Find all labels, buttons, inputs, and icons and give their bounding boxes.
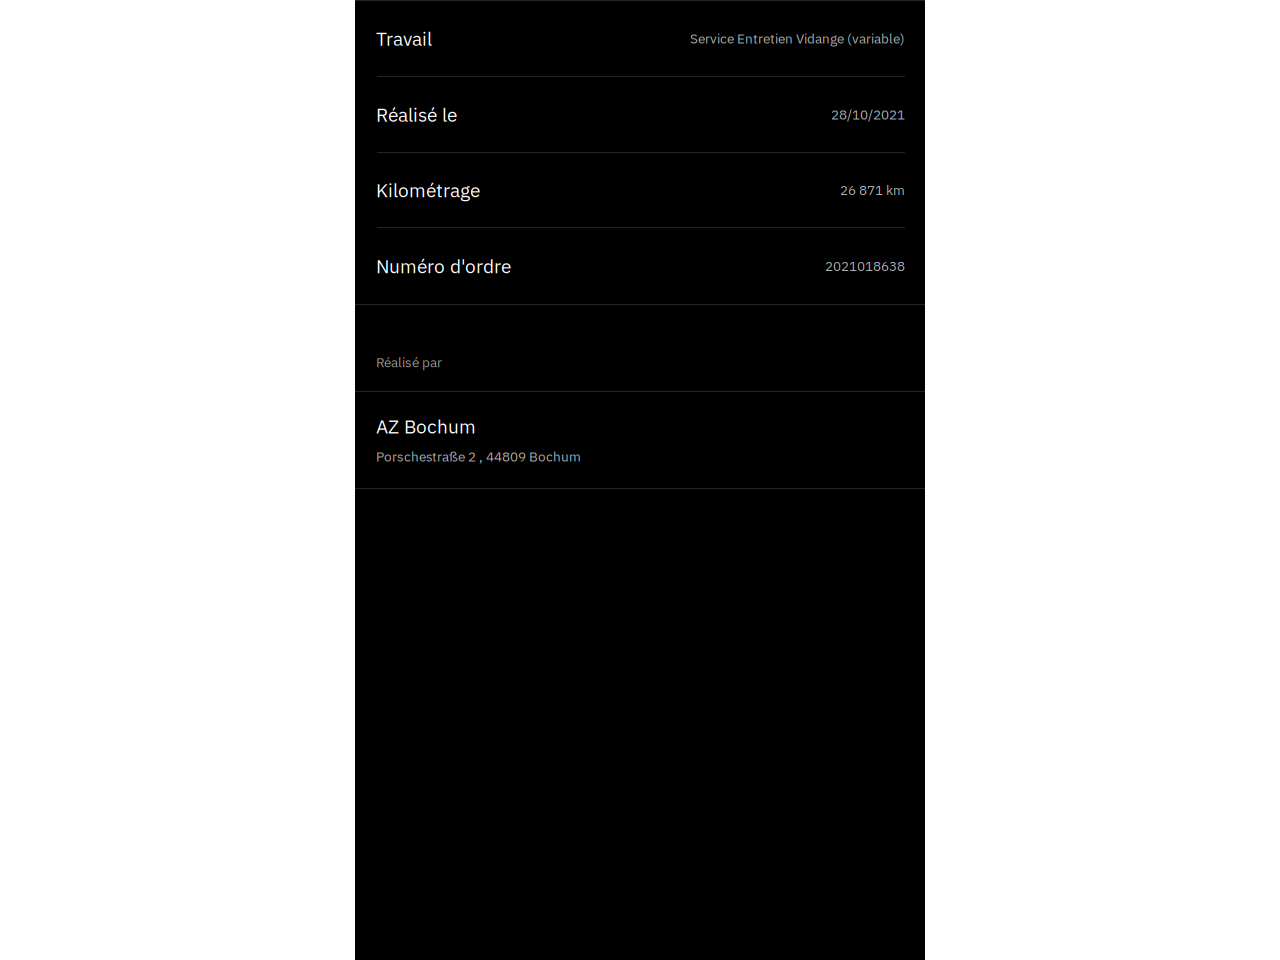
staticText: Numéro d'ordre	[376, 254, 511, 278]
staticText: Service Entretien Vidange (variable)	[690, 30, 905, 47]
button[interactable]: Kilométrage	[355, 153, 925, 227]
staticText: Porschestraße 2 , 44809 Bochum	[376, 448, 581, 465]
staticText: 2021018638	[825, 257, 905, 275]
staticText: Réalisé par	[376, 353, 442, 371]
button[interactable]: AZ Bochum	[355, 392, 925, 488]
staticText: Travail	[376, 26, 432, 51]
button[interactable]: Travail	[355, 1, 925, 76]
button[interactable]: Numéro d'ordre	[355, 228, 925, 304]
button[interactable]: Réalisé le	[355, 77, 925, 152]
staticText: Réalisé le	[376, 102, 457, 127]
staticText: 28/10/2021	[831, 106, 905, 123]
staticText: Kilométrage	[376, 178, 480, 202]
staticText: 26 871 km	[840, 181, 905, 199]
staticText: AZ Bochum	[376, 414, 476, 439]
